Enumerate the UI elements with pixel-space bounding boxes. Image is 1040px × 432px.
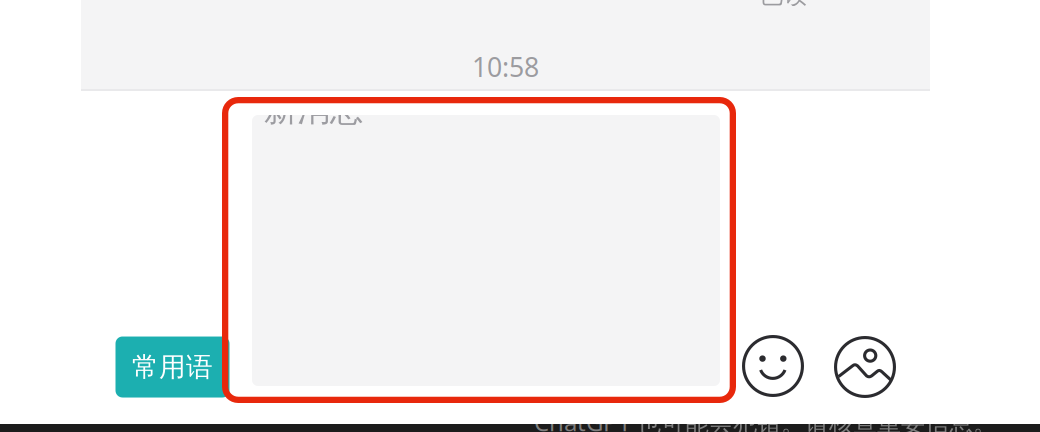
staticText: 已读: [760, 0, 808, 9]
button[interactable]: Photos: [834, 336, 896, 398]
button[interactable]: 常用语: [115, 336, 229, 397]
staticText: 10:58: [472, 49, 539, 84]
staticText: 常用语: [132, 351, 213, 383]
staticText: 新消息: [264, 89, 363, 130]
button[interactable]: Emoji: [742, 335, 804, 397]
staticText: ChatGPT 也可能会犯错。请核查重要信息。: [534, 406, 997, 432]
